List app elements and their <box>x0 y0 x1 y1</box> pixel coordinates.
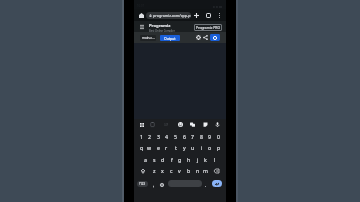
button[interactable]: t <box>171 142 180 153</box>
button[interactable]: Emoji <box>177 121 184 128</box>
staticText: l <box>214 156 216 163</box>
button[interactable]: Shift <box>137 165 148 176</box>
button[interactable]: More options <box>215 9 224 21</box>
staticText: Best Online Compiler <box>149 29 175 33</box>
button[interactable]: v <box>175 165 184 176</box>
button[interactable]: , <box>150 179 158 190</box>
button[interactable]: 7 <box>188 131 197 142</box>
staticText: i <box>201 144 203 151</box>
button[interactable]: Tabs <box>204 9 213 21</box>
staticText: s <box>153 156 156 163</box>
staticText: f <box>171 156 173 163</box>
staticText: p <box>217 144 221 151</box>
staticText: y <box>183 144 186 151</box>
button[interactable]: g <box>175 154 184 165</box>
button[interactable]: 3 <box>154 131 163 142</box>
button[interactable]: o <box>205 142 214 153</box>
button[interactable]: x <box>158 165 167 176</box>
staticText: a <box>144 156 147 163</box>
button[interactable]: Programiz PRO <box>194 24 222 31</box>
staticText: g <box>178 156 182 163</box>
button[interactable]: Enter <box>212 180 222 187</box>
button[interactable]: c <box>167 165 176 176</box>
button[interactable]: main.c... <box>140 35 156 41</box>
button[interactable]: e <box>154 142 163 153</box>
button[interactable]: d <box>158 154 167 165</box>
button[interactable]: p <box>214 142 223 153</box>
button[interactable]: New tab <box>192 9 201 21</box>
button[interactable]: i <box>197 142 206 153</box>
button[interactable]: 2 <box>145 131 154 142</box>
staticText: j <box>197 156 199 163</box>
staticText: c <box>170 167 173 174</box>
button[interactable]: Share <box>201 32 209 43</box>
button[interactable]: 9 <box>205 131 214 142</box>
button[interactable]: Clipboard <box>149 121 156 128</box>
button[interactable]: f <box>167 154 176 165</box>
button[interactable]: k <box>201 154 210 165</box>
staticText: 7 <box>191 133 194 140</box>
staticText: m <box>203 167 208 174</box>
staticText: 2 <box>148 133 151 140</box>
button[interactable]: GIF <box>163 121 170 128</box>
button[interactable]: programiz.com/cpp-p <box>146 12 191 19</box>
button[interactable]: l <box>210 154 219 165</box>
staticText: w <box>147 144 152 151</box>
button[interactable]: ?123 <box>137 181 148 187</box>
button[interactable]: q <box>137 142 146 153</box>
button[interactable]: 4 <box>162 131 171 142</box>
button[interactable]: Space <box>168 180 202 187</box>
staticText: 0 <box>217 133 220 140</box>
staticText: , <box>153 181 155 188</box>
button[interactable]: r <box>162 142 171 153</box>
staticText: Output <box>164 36 176 41</box>
staticText: main.c... <box>142 36 155 40</box>
staticText: k <box>204 156 207 163</box>
button[interactable]: Run <box>210 34 220 41</box>
staticText: e <box>157 144 160 151</box>
staticText: 3 <box>157 133 160 140</box>
button[interactable]: u <box>188 142 197 153</box>
button[interactable]: Keyboard modes <box>138 121 145 128</box>
button[interactable]: a <box>141 154 150 165</box>
button[interactable]: . <box>202 179 210 190</box>
button[interactable]: Home <box>137 9 146 21</box>
button[interactable]: b <box>184 165 193 176</box>
button[interactable]: h <box>184 154 193 165</box>
staticText: x <box>161 167 164 174</box>
button[interactable]: w <box>145 142 154 153</box>
staticText: 1 <box>140 133 143 140</box>
button[interactable]: Voice input <box>214 121 221 128</box>
button[interactable]: j <box>193 154 202 165</box>
button[interactable]: Menu <box>138 22 145 31</box>
staticText: v <box>178 167 181 174</box>
button[interactable]: 8 <box>197 131 206 142</box>
button[interactable]: Output <box>160 35 180 41</box>
button[interactable]: Settings <box>194 32 202 43</box>
button[interactable]: Translate <box>189 121 196 128</box>
staticText: d <box>161 156 165 163</box>
button[interactable]: s <box>150 154 159 165</box>
staticText: q <box>140 144 144 151</box>
button[interactable]: Stickers <box>202 121 209 128</box>
staticText: ?123 <box>139 182 146 186</box>
staticText: z <box>153 167 156 174</box>
staticText: 9 <box>208 133 211 140</box>
button[interactable]: 1 <box>137 131 146 142</box>
button[interactable]: Backspace <box>211 165 222 176</box>
staticText: r <box>165 144 168 151</box>
staticText: 4 <box>165 133 168 140</box>
button[interactable]: Assistant <box>158 179 166 190</box>
button[interactable]: y <box>180 142 189 153</box>
button[interactable]: z <box>150 165 159 176</box>
button[interactable]: 5 <box>171 131 180 142</box>
button[interactable]: n <box>193 165 202 176</box>
staticText: 8 <box>200 133 203 140</box>
button[interactable]: m <box>201 165 210 176</box>
staticText: h <box>187 156 191 163</box>
staticText: . <box>205 181 207 188</box>
button[interactable]: 6 <box>180 131 189 142</box>
button[interactable]: 0 <box>214 131 223 142</box>
staticText: n <box>196 167 200 174</box>
